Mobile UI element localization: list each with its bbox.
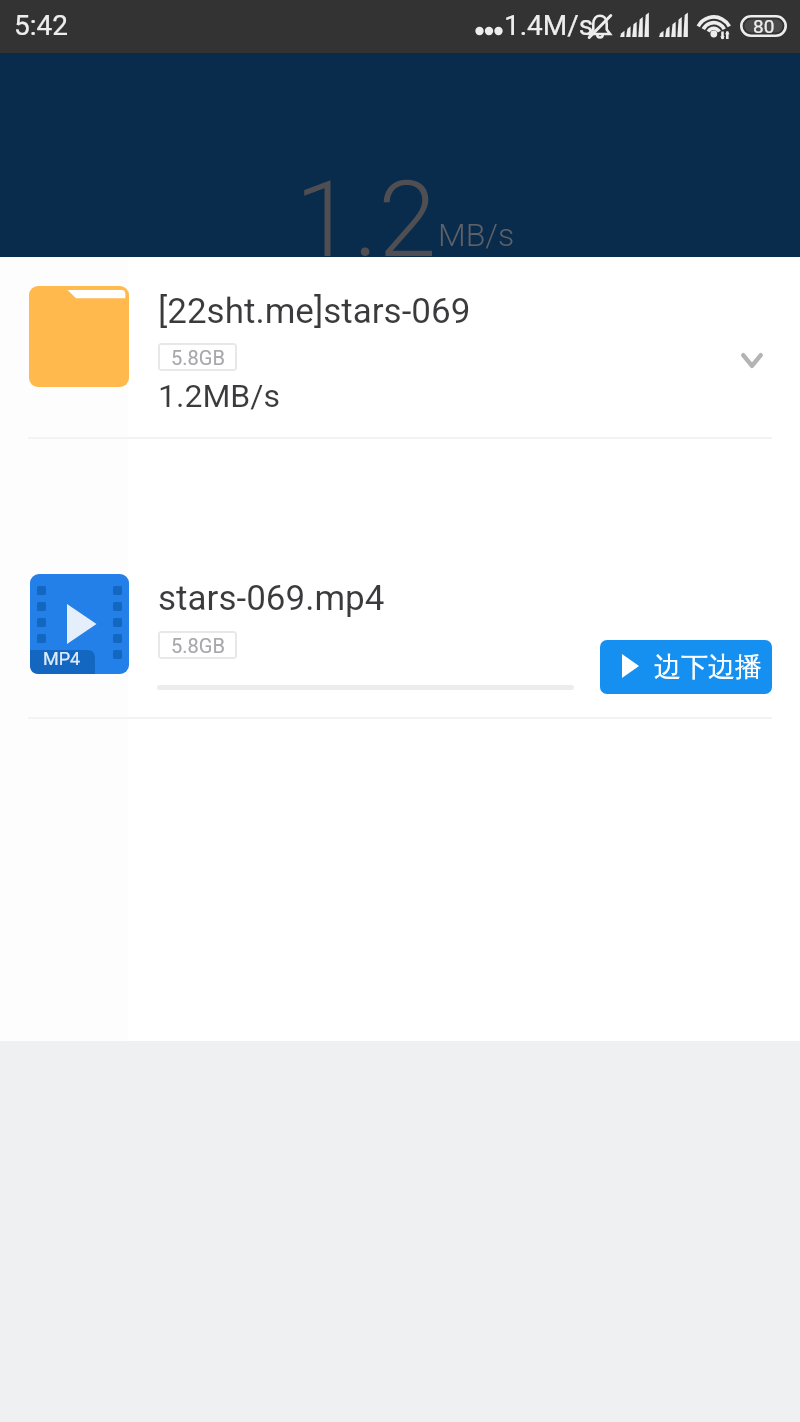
button[interactable]: Expand folder (712, 320, 792, 400)
button[interactable]: 边下边播 (600, 640, 772, 694)
staticText: MB/s (438, 216, 515, 254)
staticText: 1.4M/s (504, 9, 594, 42)
staticText: 5:42 (14, 9, 68, 42)
staticText: 1.2MB/s (158, 377, 280, 415)
button[interactable]: MP4 (0, 543, 800, 718)
staticText: 5.8GB (171, 634, 225, 657)
staticText: [22sht.me]stars-069 (158, 291, 471, 332)
staticText: stars-069.mp4 (158, 578, 385, 619)
staticText: 边下边播 (654, 650, 762, 684)
staticText: 80 (753, 15, 775, 37)
staticText: MP4 (43, 648, 81, 669)
button[interactable]: [22sht.me]stars-069 (0, 257, 800, 438)
staticText: 5.8GB (171, 346, 225, 369)
staticText: 1.2 (295, 159, 437, 282)
